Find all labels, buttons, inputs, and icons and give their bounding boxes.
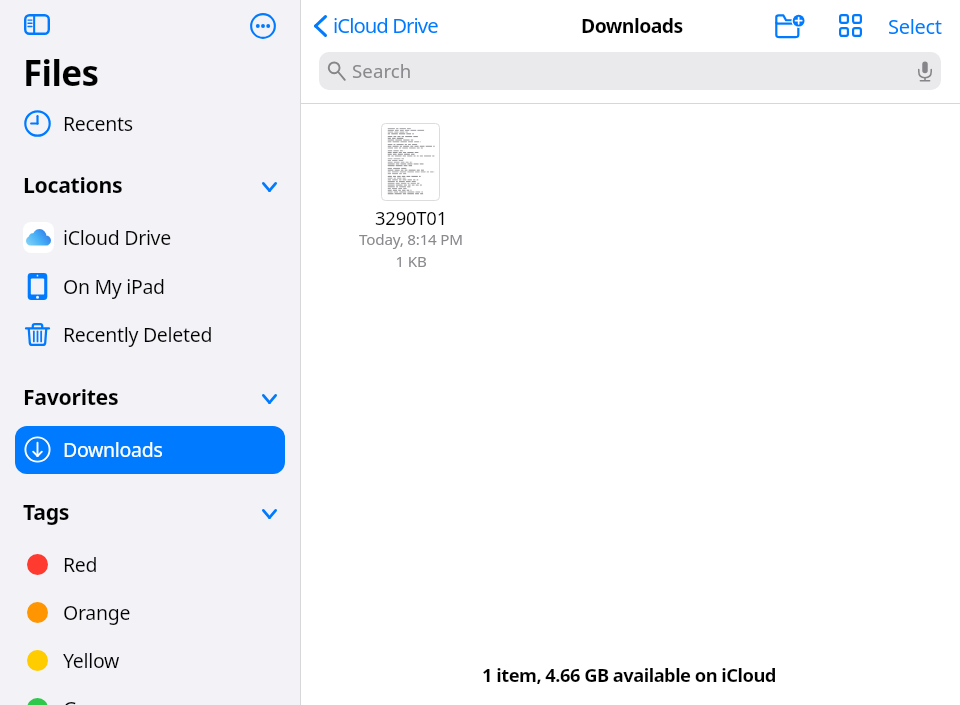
staticText: On My iPad	[63, 273, 165, 300]
button[interactable]: Recently Deleted	[0, 311, 300, 359]
staticText: iCloud Drive	[63, 224, 171, 251]
staticText: Favorites	[23, 382, 119, 411]
staticText: Today, 8:14 PM	[335, 229, 487, 250]
button[interactable]: Select	[882, 5, 944, 45]
button[interactable]: Grid View	[833, 8, 868, 43]
staticText: Orange	[63, 599, 131, 626]
staticText: Recently Deleted	[63, 321, 213, 348]
staticText: Recents	[63, 110, 133, 137]
staticText: Select	[888, 13, 942, 40]
staticText: Locations	[23, 170, 123, 199]
button[interactable]: Orange	[0, 588, 300, 636]
staticText: Downloads	[581, 12, 683, 38]
button[interactable]: iCloud Drive	[307, 4, 447, 46]
staticText: Downloads	[63, 436, 163, 463]
button[interactable]: Search	[319, 52, 941, 90]
button[interactable]: Yellow	[0, 636, 300, 684]
staticText: Files	[23, 49, 99, 97]
staticText: 1 KB	[335, 251, 487, 272]
button[interactable]: Red	[0, 540, 300, 588]
staticText: Green	[63, 695, 118, 705]
staticText: Search	[352, 58, 412, 83]
staticText: Red	[63, 551, 98, 578]
button[interactable]: Downloads	[15, 426, 285, 474]
button[interactable]: Locations	[0, 159, 300, 203]
button[interactable]: Favorites	[0, 371, 300, 415]
staticText: Tags	[23, 497, 70, 526]
button[interactable]: Toggle Sidebar	[17, 7, 57, 42]
button[interactable]: Recents	[0, 100, 300, 148]
button[interactable]: New Folder	[769, 8, 810, 43]
staticText: iCloud Drive	[333, 11, 438, 39]
button[interactable]: Green	[0, 684, 300, 705]
button[interactable]: On My iPad	[0, 263, 300, 311]
button[interactable]: 3290T01	[335, 118, 487, 278]
button[interactable]: iCloud Drive	[0, 214, 300, 262]
staticText: 1 item, 4.66 GB available on iCloud	[482, 662, 776, 687]
button[interactable]: Tags	[0, 486, 300, 530]
staticText: 3290T01	[335, 205, 487, 230]
button[interactable]: More	[245, 8, 281, 44]
staticText: Yellow	[63, 647, 120, 674]
